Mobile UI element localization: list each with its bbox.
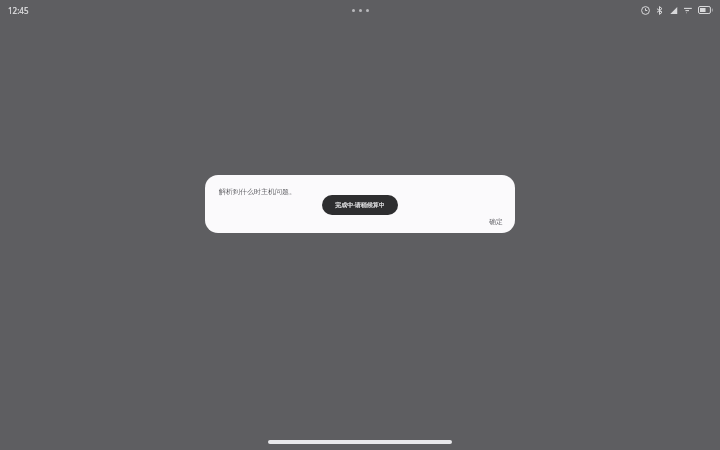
staticText: 确定 [489,217,503,226]
staticText: 12:45 [8,5,29,16]
button[interactable]: Home [268,440,452,444]
staticText: 解析到什么时主机问题。 [219,187,296,196]
button[interactable]: 确定 [489,217,515,233]
staticText: 完成中·请稍候算中 [335,201,385,209]
button[interactable]: 完成中·请稍候算中 [322,195,398,215]
